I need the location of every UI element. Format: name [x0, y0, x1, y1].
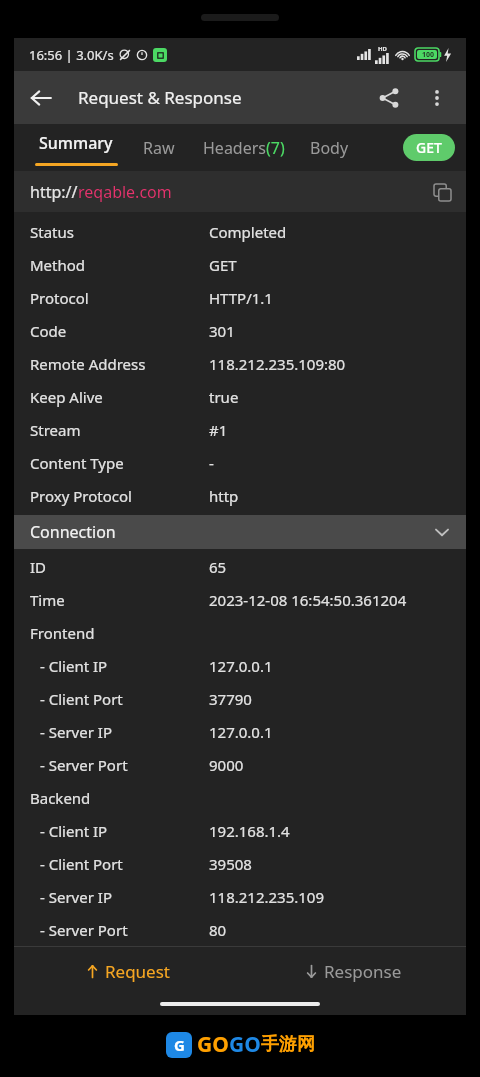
- staticText: - Server Port: [40, 755, 209, 775]
- staticText: 39508: [209, 854, 252, 874]
- staticText: 16:56 | 3.0K/s: [29, 46, 114, 64]
- button[interactable]: Method: [14, 248, 466, 281]
- button[interactable]: Status: [14, 215, 466, 248]
- staticText: GET: [209, 255, 237, 275]
- staticText: - Client IP: [40, 821, 209, 841]
- staticText: (7): [266, 137, 285, 159]
- staticText: Connection: [30, 521, 116, 543]
- button[interactable]: Connection: [14, 515, 466, 549]
- staticText: Method: [30, 255, 209, 275]
- staticText: 118.212.235.109: [209, 887, 325, 907]
- button[interactable]: More options: [414, 75, 460, 121]
- staticText: Completed: [209, 222, 287, 242]
- staticText: - Client Port: [40, 689, 209, 709]
- button[interactable]: Raw: [127, 124, 191, 171]
- button[interactable]: Time: [14, 583, 466, 616]
- staticText: Raw: [143, 137, 175, 159]
- staticText: #1: [209, 420, 228, 440]
- staticText: 118.212.235.109:80: [209, 354, 346, 374]
- staticText: Request & Response: [78, 86, 364, 109]
- staticText: Headers: [203, 137, 266, 159]
- staticText: -: [209, 453, 214, 473]
- staticText: Request: [105, 960, 170, 983]
- button[interactable]: - Client IP: [14, 814, 466, 847]
- button[interactable]: http://: [14, 171, 466, 212]
- staticText: 100: [422, 50, 435, 60]
- staticText: G: [174, 1035, 185, 1055]
- button[interactable]: - Client IP: [14, 649, 466, 682]
- button[interactable]: Response: [240, 947, 466, 995]
- staticText: 192.168.1.4: [209, 821, 290, 841]
- staticText: Proxy Protocol: [30, 486, 209, 506]
- button[interactable]: Proxy Protocol: [14, 479, 466, 512]
- button[interactable]: Request: [14, 947, 240, 995]
- button[interactable]: Stream: [14, 413, 466, 446]
- button[interactable]: - Client Port: [14, 682, 466, 715]
- staticText: true: [209, 387, 239, 407]
- button[interactable]: - Server IP: [14, 715, 466, 748]
- button[interactable]: Headers: [191, 124, 297, 171]
- staticText: 301: [209, 321, 235, 341]
- button[interactable]: Share: [364, 73, 414, 123]
- button[interactable]: Back: [14, 71, 67, 124]
- staticText: - Client Port: [40, 854, 209, 874]
- staticText: Time: [30, 590, 209, 610]
- staticText: 2023-12-08 16:54:50.361204: [209, 590, 407, 610]
- button[interactable]: Content Type: [14, 446, 466, 479]
- button[interactable]: Remote Address: [14, 347, 466, 380]
- button[interactable]: Copy URL: [422, 172, 462, 212]
- button[interactable]: - Server Port: [14, 913, 466, 946]
- button[interactable]: - Client Port: [14, 847, 466, 880]
- button[interactable]: Frontend: [14, 616, 466, 649]
- staticText: Stream: [30, 420, 209, 440]
- staticText: GO: [229, 1030, 261, 1059]
- staticText: reqable.com: [78, 181, 172, 203]
- staticText: Summary: [39, 132, 113, 154]
- button[interactable]: Backend: [14, 781, 466, 814]
- staticText: Code: [30, 321, 209, 341]
- staticText: 9000: [209, 755, 244, 775]
- staticText: - Server Port: [40, 920, 209, 940]
- staticText: Keep Alive: [30, 387, 209, 407]
- staticText: Remote Address: [30, 354, 209, 374]
- staticText: Body: [310, 137, 349, 159]
- staticText: GO: [197, 1030, 229, 1059]
- button[interactable]: ID: [14, 550, 466, 583]
- staticText: 127.0.0.1: [209, 656, 273, 676]
- staticText: 65: [209, 557, 227, 577]
- staticText: GET: [416, 138, 442, 157]
- staticText: 80: [209, 920, 227, 940]
- staticText: 37790: [209, 689, 252, 709]
- button[interactable]: Code: [14, 314, 466, 347]
- button[interactable]: Protocol: [14, 281, 466, 314]
- button[interactable]: Summary: [25, 124, 127, 171]
- staticText: http: [209, 486, 239, 506]
- staticText: - Server IP: [40, 722, 209, 742]
- staticText: 127.0.0.1: [209, 722, 273, 742]
- staticText: Protocol: [30, 288, 209, 308]
- button[interactable]: GET: [403, 134, 455, 161]
- staticText: Response: [324, 960, 402, 983]
- staticText: - Server IP: [40, 887, 209, 907]
- button[interactable]: Body: [297, 124, 362, 171]
- button[interactable]: Keep Alive: [14, 380, 466, 413]
- staticText: Frontend: [30, 623, 209, 643]
- staticText: - Client IP: [40, 656, 209, 676]
- staticText: HD: [378, 45, 387, 53]
- button[interactable]: - Server IP: [14, 880, 466, 913]
- staticText: Content Type: [30, 453, 209, 473]
- staticText: Status: [30, 222, 209, 242]
- staticText: ID: [30, 557, 209, 577]
- button[interactable]: - Server Port: [14, 748, 466, 781]
- staticText: 手游网: [261, 1033, 315, 1056]
- staticText: HTTP/1.1: [209, 288, 273, 308]
- staticText: http://: [30, 181, 78, 203]
- staticText: Backend: [30, 788, 209, 808]
